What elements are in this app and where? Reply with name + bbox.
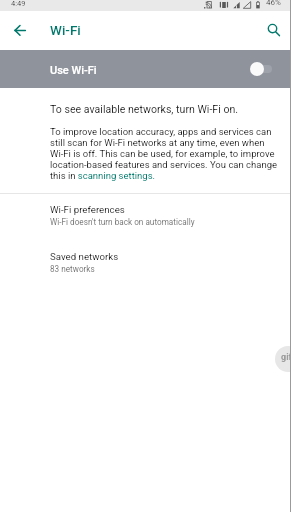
staticText: 83 networks	[50, 264, 95, 274]
staticText: To see available networks, turn Wi‑Fi on…	[50, 103, 239, 115]
staticText: Saved networks	[50, 251, 119, 262]
button[interactable]	[0, 194, 291, 242]
staticText: Wi‑Fi	[50, 22, 81, 38]
button[interactable]	[0, 242, 291, 288]
staticText: gif	[281, 352, 291, 363]
staticText: Wi‑Fi doesn't turn back on automatically	[50, 217, 195, 227]
staticText: 46%	[266, 0, 281, 7]
staticText: Use Wi‑Fi	[50, 64, 97, 77]
staticText: To improve location accuracy, apps and s…	[50, 126, 279, 181]
button[interactable]: Navigate up	[10, 21, 30, 41]
staticText: 4:49	[11, 0, 26, 8]
button[interactable]: Search	[263, 20, 283, 40]
staticText: Wi‑Fi preferences	[50, 204, 125, 215]
button[interactable]	[0, 50, 291, 88]
